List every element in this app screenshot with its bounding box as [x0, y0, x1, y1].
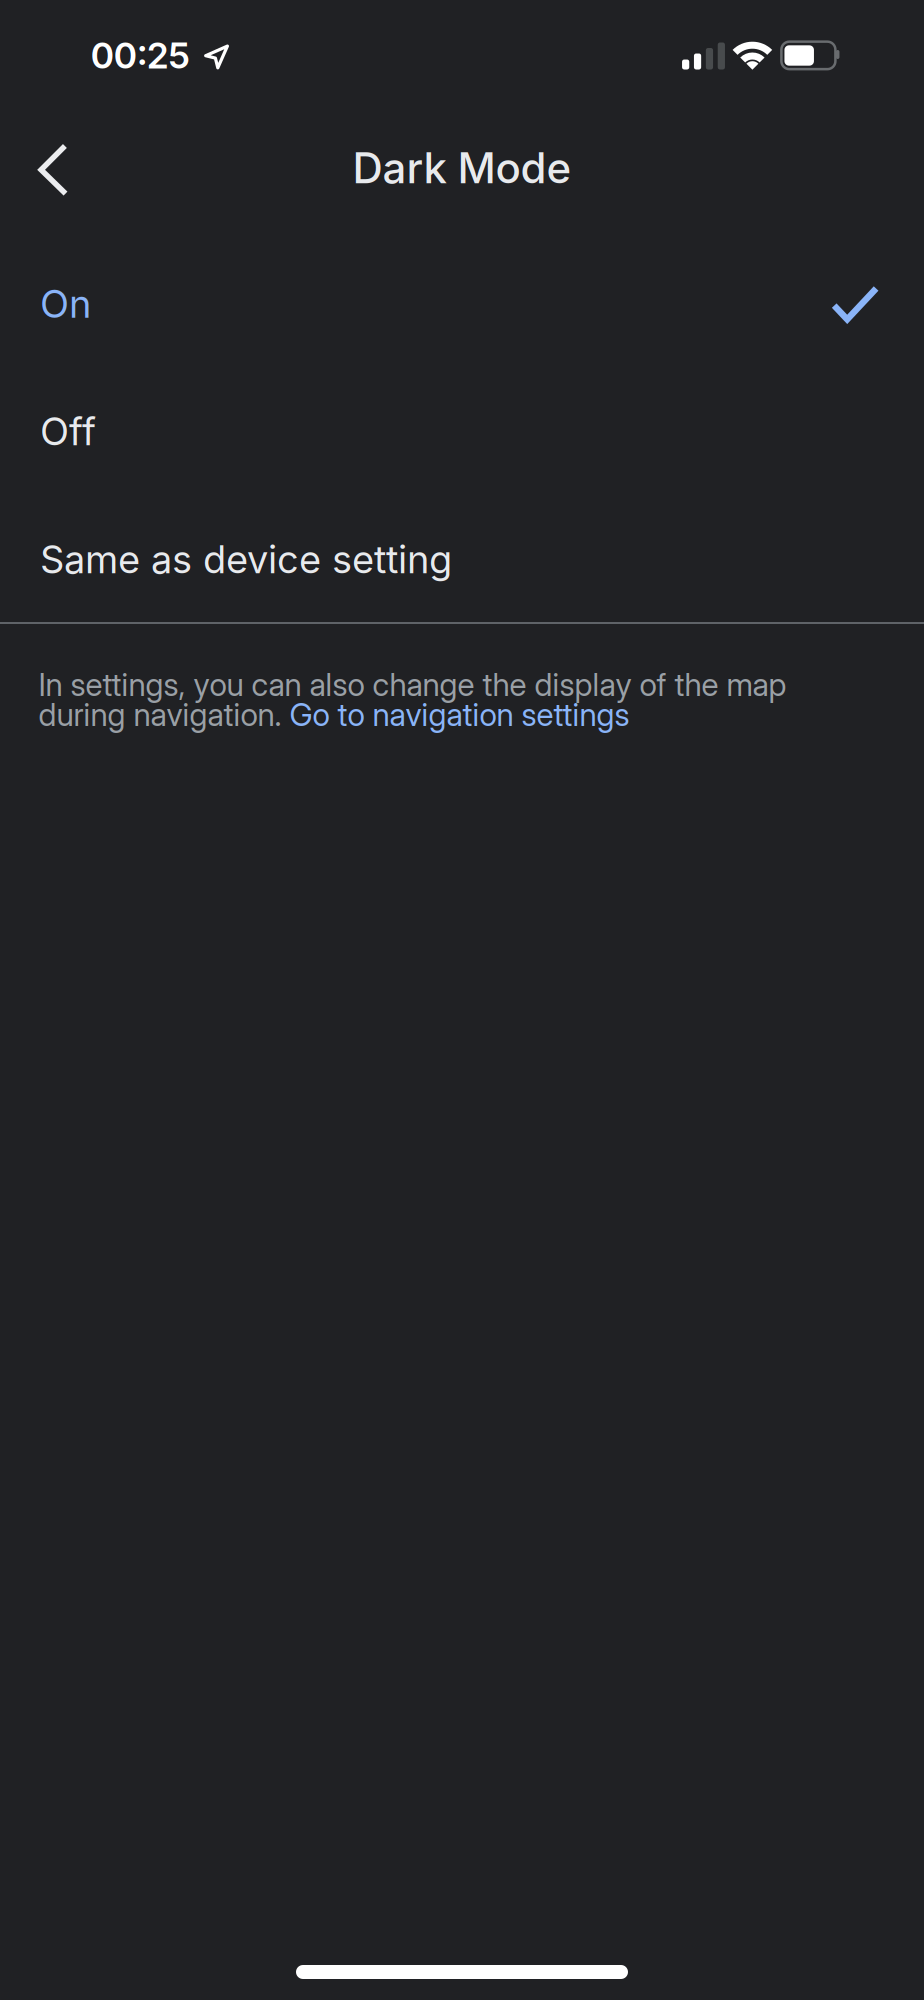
- staticText: during navigation.: [38, 695, 289, 733]
- staticText: Off: [40, 409, 96, 454]
- staticText: Dark Mode: [352, 143, 571, 193]
- staticText: Same as device setting: [40, 537, 452, 582]
- staticText: Go to navigation settings: [289, 695, 629, 733]
- button[interactable]: Same as device setting: [0, 495, 924, 623]
- button[interactable]: Off: [0, 367, 924, 495]
- staticText: In settings, you can also change the dis…: [38, 665, 786, 703]
- button[interactable]: On: [0, 240, 924, 368]
- staticText: On: [40, 282, 91, 326]
- button[interactable]: Back: [31, 138, 75, 202]
- staticText: 00:25: [90, 34, 190, 77]
- button[interactable]: Go to navigation settings: [289, 695, 629, 733]
